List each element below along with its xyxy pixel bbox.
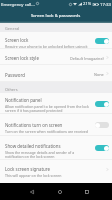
staticText: Emergency call... [1,1,35,7]
staticText: 17:33 [100,1,111,7]
staticText: Notifications turn on screen [5,122,63,128]
staticText: General [5,26,20,31]
staticText: Password [5,72,25,78]
staticText: Lock screen signature [5,166,50,172]
button[interactable]: Show detailed notifications [0,136,112,160]
staticText: Show the message details and sender of a… [5,150,93,159]
staticText: Allow notification panel to be opened fr… [5,104,93,113]
staticText: None [94,72,104,77]
staticText: Notification panel [5,97,42,103]
button[interactable]: Back [26,186,38,198]
staticText: Require your phone to be unlocked before… [5,44,88,49]
staticText: Screen lock style [5,55,39,61]
staticText: Turn on the screen when notifications ar… [5,129,88,134]
button[interactable]: Password [0,65,112,82]
button[interactable]: Recent apps [81,186,93,198]
staticText: 21% [83,1,92,7]
staticText: Screen lock & passwords [31,12,81,18]
button[interactable]: Notification panel [0,93,112,114]
button[interactable]: Notifications turn on screen [0,114,112,136]
staticText: Show detailed notifications [5,143,61,149]
staticText: Default (magazine) [70,56,104,61]
button[interactable]: Lock screen signature [0,160,112,178]
staticText: Screen lock [5,37,29,43]
button[interactable]: Screen lock [0,32,112,49]
staticText: This will appear on the lock screen [5,173,62,178]
staticText: Others [5,87,18,92]
button[interactable]: Screen lock style [0,49,112,65]
button[interactable]: Home [54,186,66,198]
